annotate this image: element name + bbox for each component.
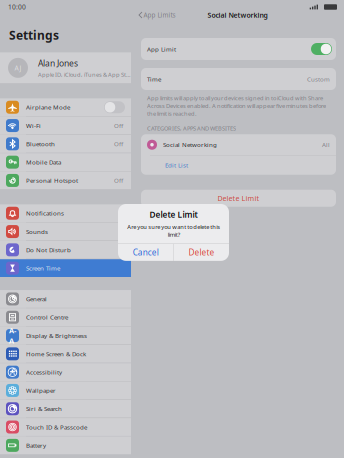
staticText: Apple ID, iCloud, iTunes & App St… — [38, 70, 131, 78]
staticText: Delete Limit — [149, 209, 197, 220]
button[interactable]: Control Centre — [0, 308, 131, 326]
staticText: Delete — [188, 247, 214, 258]
button[interactable]: Battery — [0, 436, 131, 454]
staticText: AA — [9, 325, 16, 346]
staticText: Off — [114, 140, 123, 148]
button[interactable]: Delete Limit — [131, 190, 344, 207]
staticText: Wallpaper — [26, 386, 56, 395]
staticText: Wi-Fi — [26, 121, 41, 130]
button[interactable]: Time — [131, 68, 344, 90]
button[interactable]: Do Not Disturb — [0, 241, 131, 259]
staticText: Airplane Mode — [26, 103, 70, 111]
staticText: Delete Limit — [217, 193, 259, 203]
staticText: Siri & Search — [26, 405, 62, 413]
button[interactable]: App Limits — [131, 11, 175, 19]
button[interactable]: Notifications — [0, 204, 131, 222]
staticText: Personal Hotspot — [26, 176, 78, 185]
staticText: Battery — [26, 441, 46, 450]
staticText: App Limit — [147, 45, 176, 53]
staticText: App Limits — [143, 11, 175, 19]
button[interactable]: Bluetooth — [0, 135, 131, 153]
staticText: App limits will apply to all your device… — [147, 94, 326, 117]
staticText: Time — [147, 75, 161, 83]
staticText: Screen Time — [26, 264, 60, 272]
button[interactable]: Social Networking — [141, 134, 336, 155]
button[interactable]: Cancel — [118, 244, 173, 261]
button[interactable]: Accessibility — [0, 363, 131, 381]
staticText: AJ — [14, 63, 21, 72]
button[interactable]: Wallpaper — [0, 381, 131, 399]
button[interactable]: Home Screen & Dock — [0, 345, 131, 363]
staticText: Are you sure you want to delete this lim… — [127, 223, 220, 238]
staticText: Mobile Data — [26, 158, 61, 166]
staticText: Bluetooth — [26, 140, 55, 148]
staticText: Accessibility — [26, 368, 62, 376]
staticText: General — [26, 295, 47, 303]
staticText: Control Centre — [26, 313, 68, 321]
staticText: Settings — [9, 27, 59, 43]
staticText: 10:00 — [8, 2, 26, 12]
staticText: CATEGORIES, APPS AND WEBSITES — [147, 124, 236, 132]
staticText: Home Screen & Dock — [26, 350, 86, 358]
staticText: Social Networking — [207, 10, 267, 20]
button[interactable]: Siri & Search — [0, 400, 131, 418]
button[interactable]: Personal Hotspot — [0, 171, 131, 189]
button[interactable]: Wi-Fi — [0, 117, 131, 134]
staticText: Custom — [307, 75, 330, 83]
staticText: Edit List — [165, 161, 188, 169]
button[interactable]: Airplane Mode — [0, 98, 131, 116]
staticText: Social Networking — [163, 141, 217, 149]
button[interactable]: Sounds — [0, 223, 131, 240]
staticText: Do Not Disturb — [26, 246, 71, 254]
staticText: Notifications — [26, 209, 64, 217]
button[interactable]: Delete — [174, 244, 229, 261]
staticText: Sounds — [26, 227, 48, 236]
button[interactable]: AJ — [0, 52, 131, 83]
staticText: Cancel — [133, 247, 159, 258]
button[interactable]: Edit List — [141, 156, 336, 175]
staticText: All — [322, 141, 330, 149]
button[interactable]: General — [0, 290, 131, 308]
button[interactable]: Screen Time — [0, 259, 131, 277]
staticText: Touch ID & Passcode — [26, 423, 87, 431]
button[interactable]: AA — [0, 327, 131, 344]
button[interactable]: Mobile Data — [0, 153, 131, 171]
staticText: Off — [114, 121, 123, 130]
button[interactable]: Touch ID & Passcode — [0, 418, 131, 436]
staticText: Off — [114, 176, 123, 185]
staticText: Alan Jones — [38, 57, 78, 69]
staticText: Display & Brightness — [26, 331, 87, 340]
